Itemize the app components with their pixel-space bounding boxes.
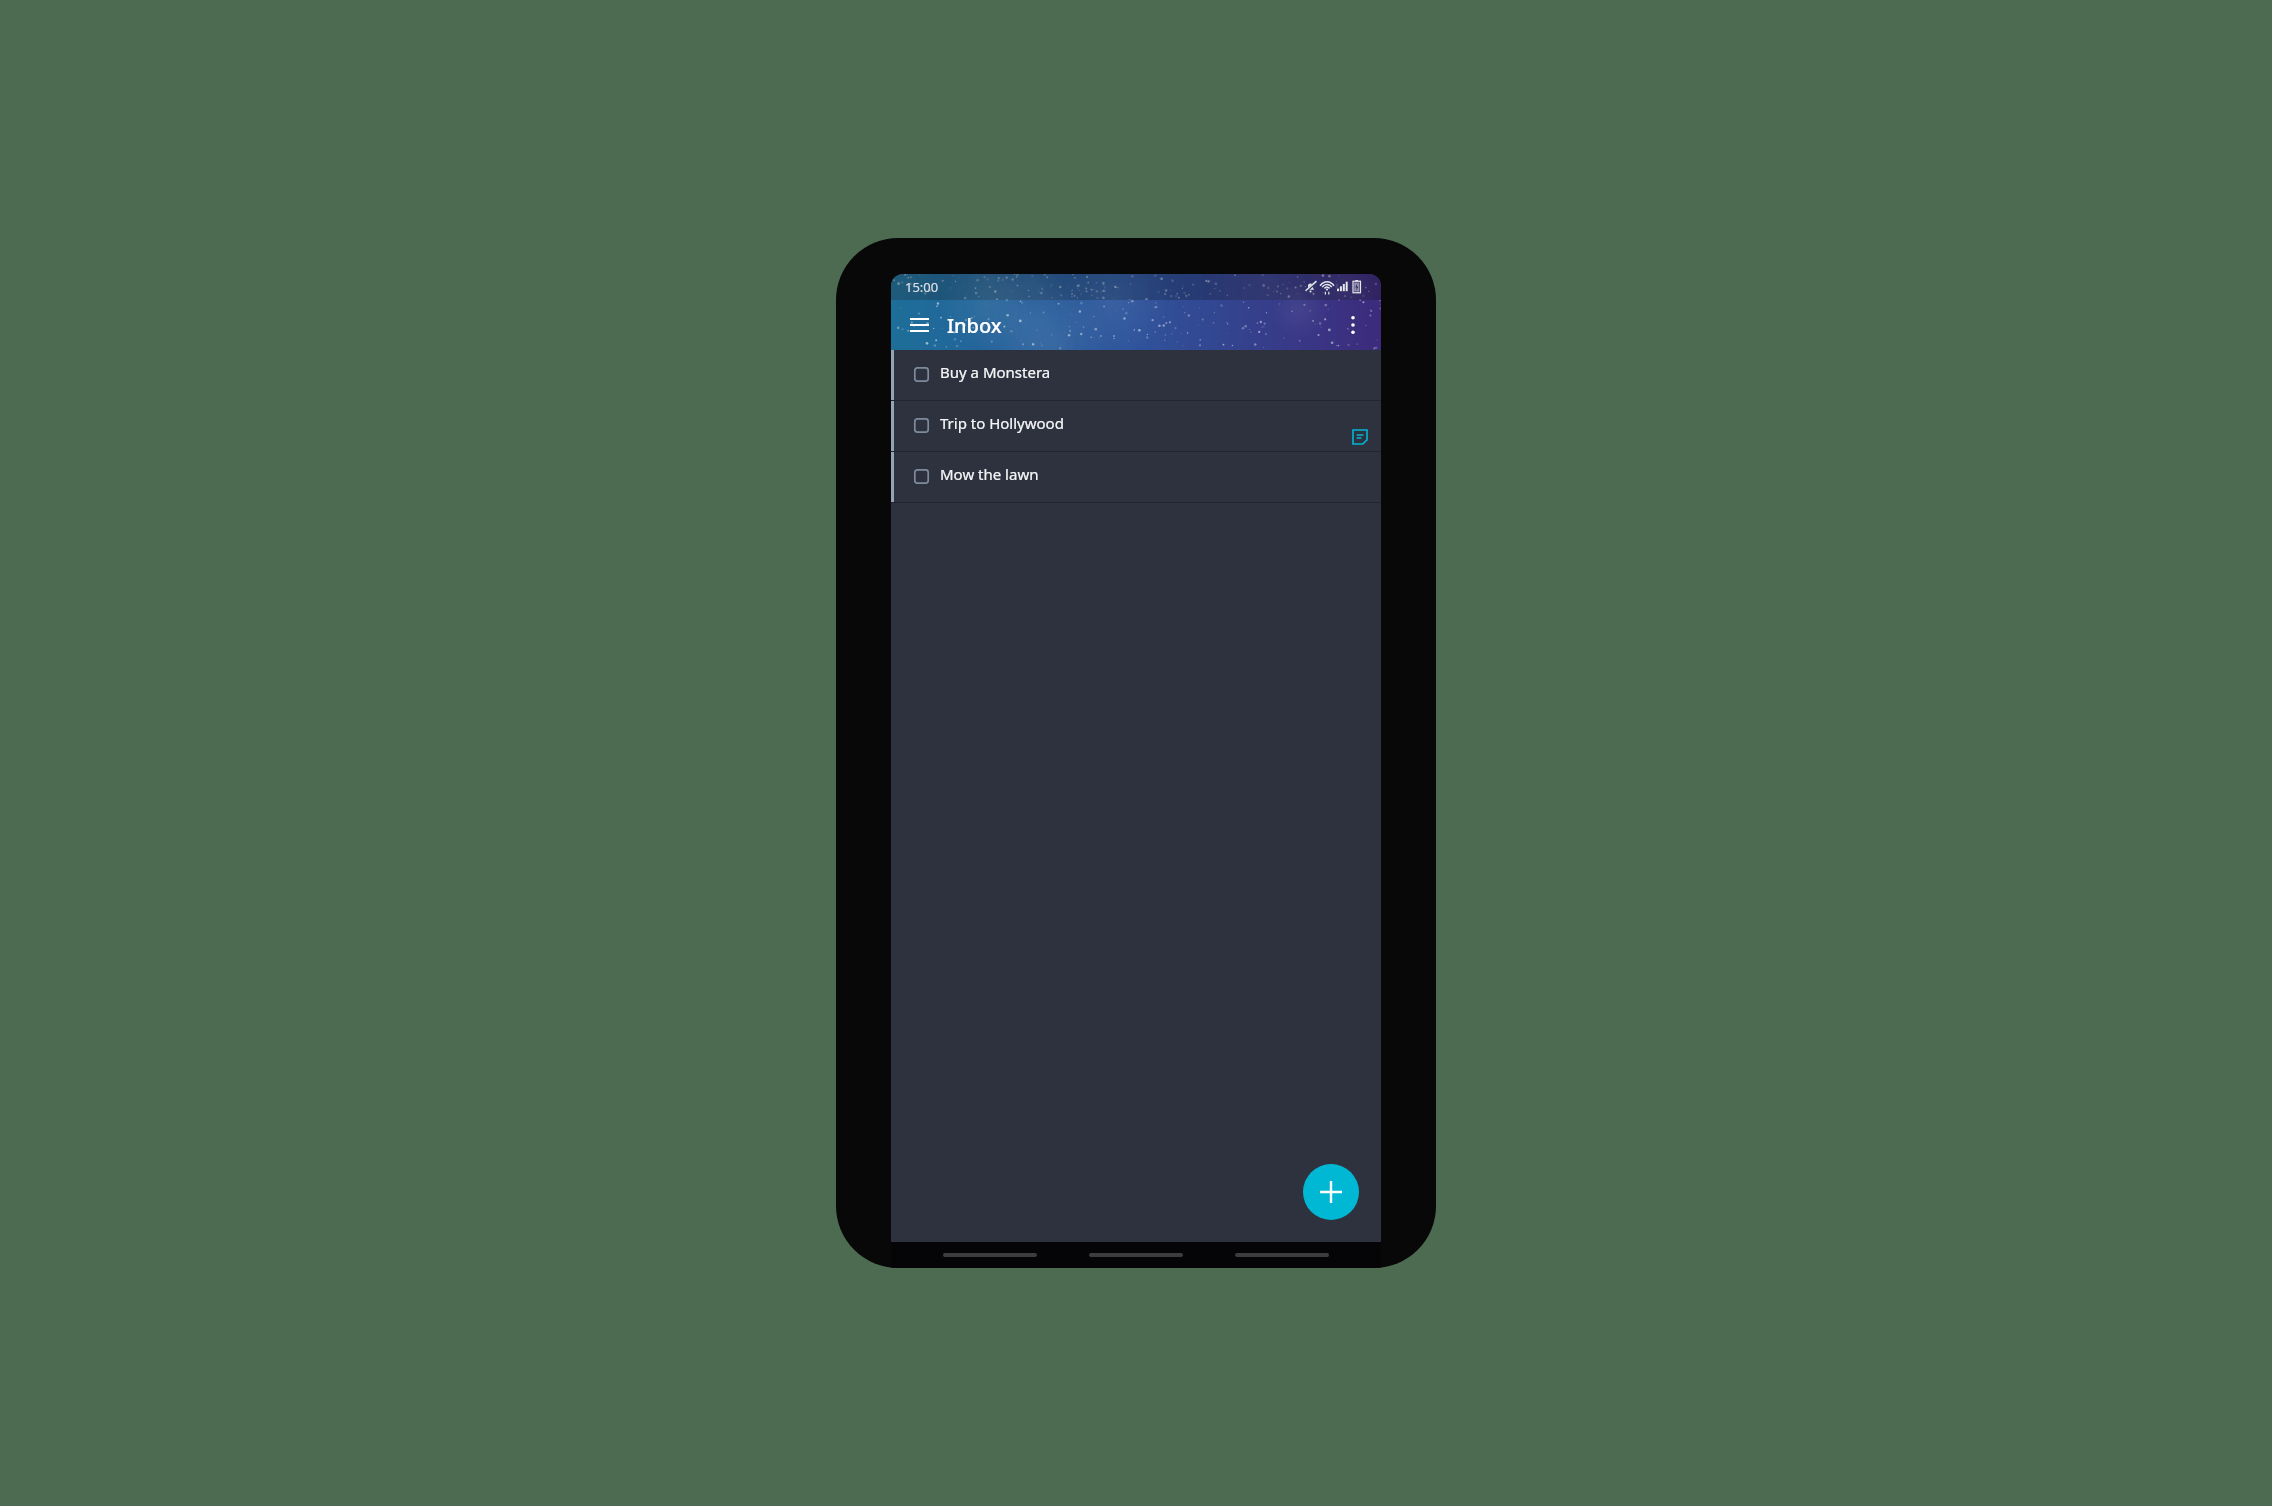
staticText: Buy a Monstera	[940, 362, 1051, 382]
button[interactable]: Back	[943, 1253, 1037, 1257]
button[interactable]: Toggle Buy a Monstera complete	[906, 359, 936, 389]
button[interactable]: Home	[1089, 1253, 1183, 1257]
button[interactable]: More options	[1331, 303, 1375, 347]
button[interactable]: Recents	[1235, 1253, 1329, 1257]
staticText: Inbox	[947, 312, 1002, 339]
button[interactable]: Toggle Trip to Hollywood complete	[891, 401, 1381, 451]
staticText: Mow the lawn	[940, 464, 1039, 484]
staticText: 15:00	[905, 278, 939, 296]
staticText: Trip to Hollywood	[940, 413, 1064, 433]
button[interactable]: Toggle Trip to Hollywood complete	[906, 410, 936, 440]
button[interactable]: Open navigation menu	[897, 303, 941, 347]
button[interactable]: Toggle Mow the lawn complete	[891, 452, 1381, 502]
button[interactable]: Add task	[1303, 1164, 1359, 1220]
other: Has note	[1353, 430, 1367, 444]
button[interactable]: Toggle Buy a Monstera complete	[891, 350, 1381, 400]
button[interactable]: Toggle Mow the lawn complete	[906, 461, 936, 491]
